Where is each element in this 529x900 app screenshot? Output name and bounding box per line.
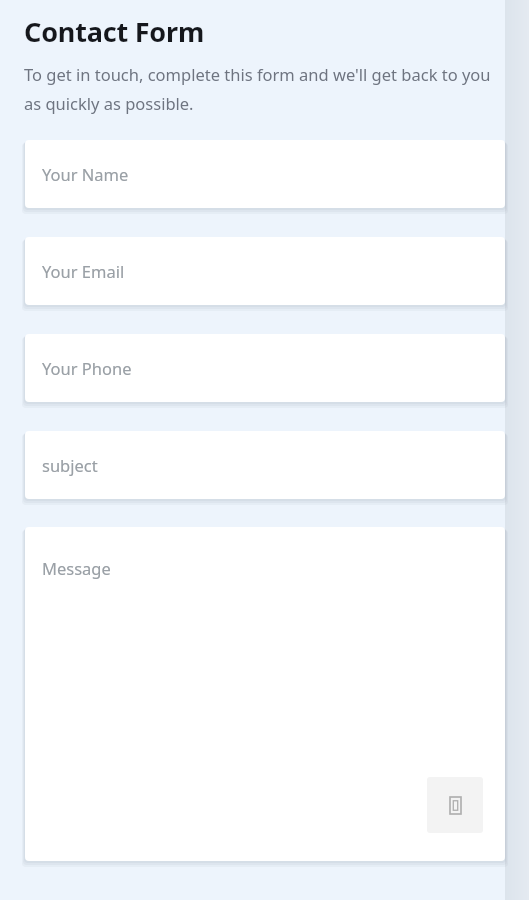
staticText: Message (42, 557, 111, 579)
button[interactable]: Your Email (25, 237, 505, 305)
button[interactable]: Attach file (427, 777, 483, 833)
button[interactable]: Your Name (25, 140, 505, 208)
staticText: Your Phone (42, 357, 132, 379)
button[interactable]: subject (25, 431, 505, 499)
staticText: Contact Form (24, 13, 205, 50)
staticText: subject (42, 454, 98, 476)
button[interactable]: Message (25, 527, 505, 861)
staticText: Your Email (42, 260, 125, 282)
staticText: Your Name (42, 163, 129, 185)
button[interactable]: Your Phone (25, 334, 505, 402)
staticText: To get in touch, complete this form and … (24, 63, 491, 115)
